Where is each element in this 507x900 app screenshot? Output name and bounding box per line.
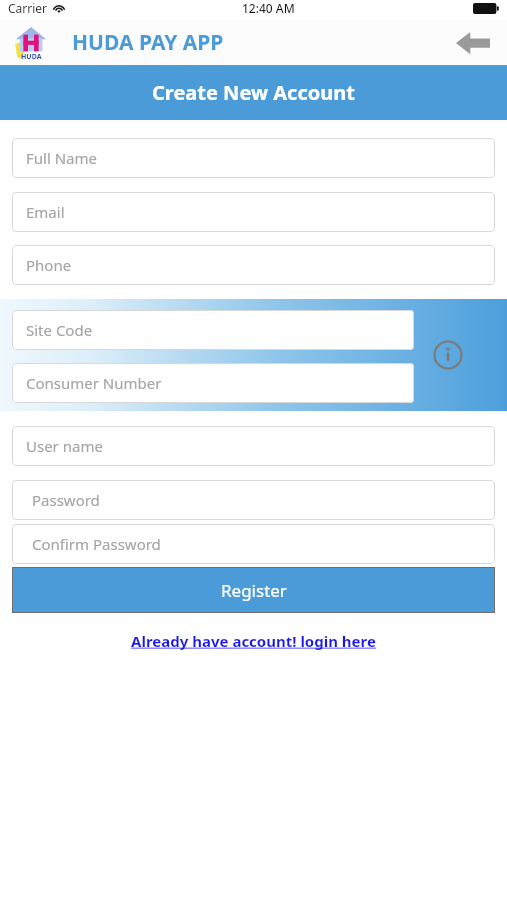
button[interactable]: Phone [12, 245, 495, 285]
button[interactable]: Confirm Password [12, 524, 495, 564]
staticText: Site Code [26, 320, 93, 340]
button[interactable]: Information [431, 338, 465, 372]
button[interactable]: User name [12, 426, 495, 466]
staticText: HUDA PAY APP [72, 28, 224, 57]
staticText: HUDA [21, 52, 42, 62]
button[interactable]: Back [451, 21, 495, 65]
staticText: Password [32, 490, 100, 510]
button[interactable]: Password [12, 480, 495, 520]
staticText: Already have account! login here [131, 631, 376, 651]
button[interactable]: Already have account! login here [0, 631, 507, 651]
staticText: Confirm Password [32, 534, 161, 554]
button[interactable]: Site Code [12, 310, 414, 350]
button[interactable]: Create New Account [0, 65, 507, 120]
staticText: User name [26, 436, 103, 456]
button[interactable]: Email [12, 192, 495, 232]
staticText: Create New Account [152, 79, 355, 106]
button[interactable]: Register [12, 567, 495, 613]
staticText: Register [221, 579, 287, 602]
staticText: Phone [26, 255, 72, 275]
staticText: Email [26, 202, 65, 222]
staticText: 12:40 AM [242, 0, 295, 16]
button[interactable]: Consumer Number [12, 363, 414, 403]
staticText: Full Name [26, 148, 97, 168]
button[interactable]: Full Name [12, 138, 495, 178]
staticText: Consumer Number [26, 373, 162, 393]
staticText: Carrier [8, 0, 48, 16]
